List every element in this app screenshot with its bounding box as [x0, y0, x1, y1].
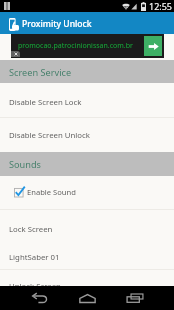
- staticText: Disable Screen Unlock: [9, 130, 90, 141]
- staticText: 12:55: [149, 0, 173, 12]
- button[interactable]: Lock Screen: [0, 210, 174, 240]
- staticText: Enable Sound: [27, 187, 76, 197]
- staticText: Proximity Unlock: [22, 18, 92, 30]
- button[interactable]: Close advertisement: [11, 51, 20, 57]
- button[interactable]: Enable Sound: [0, 176, 174, 210]
- staticText: LightSaber 01: [9, 252, 60, 263]
- button[interactable]: Proximity Unlock: [0, 12, 174, 34]
- staticText: Disable Screen Lock: [9, 97, 82, 108]
- button[interactable]: Unlock Screen: [0, 270, 174, 300]
- button[interactable]: Back: [18, 286, 62, 310]
- staticText: promocao.patrocinionissan.com.br: [18, 41, 133, 51]
- button[interactable]: Open advertisement: [144, 36, 162, 56]
- button[interactable]: Recent apps: [113, 286, 157, 310]
- staticText: Lock Screen: [9, 224, 53, 235]
- button[interactable]: Disable Screen Lock: [0, 83, 174, 118]
- button[interactable]: LightSaber 01: [0, 240, 174, 270]
- button[interactable]: Disable Screen Unlock: [0, 118, 174, 153]
- staticText: Sounds: [9, 158, 42, 171]
- staticText: Unlock Screen: [9, 281, 61, 292]
- button[interactable]: Home: [65, 286, 109, 310]
- staticText: Screen Service: [9, 66, 72, 79]
- button[interactable]: promocao.patrocinionissan.com.br: [11, 34, 164, 58]
